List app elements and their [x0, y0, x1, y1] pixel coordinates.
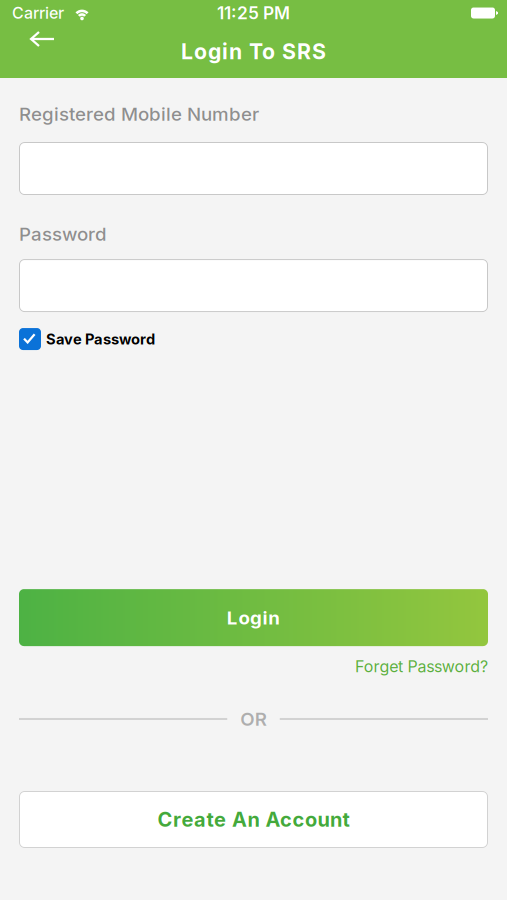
button[interactable]: Save Password [19, 312, 155, 350]
staticText: Login To SRS [181, 39, 326, 64]
button[interactable]: Create An Account [19, 791, 488, 848]
button[interactable]: Back [0, 29, 69, 53]
button[interactable]: Login [19, 589, 488, 646]
staticText: Create An Account [157, 808, 349, 831]
staticText: Carrier [12, 4, 64, 22]
staticText: Login [227, 607, 280, 629]
staticText: Registered Mobile Number [19, 103, 259, 125]
staticText: Password [19, 223, 107, 245]
staticText: Save Password [46, 330, 155, 348]
staticText: Forget Password? [355, 657, 488, 676]
staticText: 11:25 PM [217, 3, 290, 23]
staticText: OR [240, 708, 267, 730]
button[interactable]: Forget Password? [355, 657, 488, 676]
